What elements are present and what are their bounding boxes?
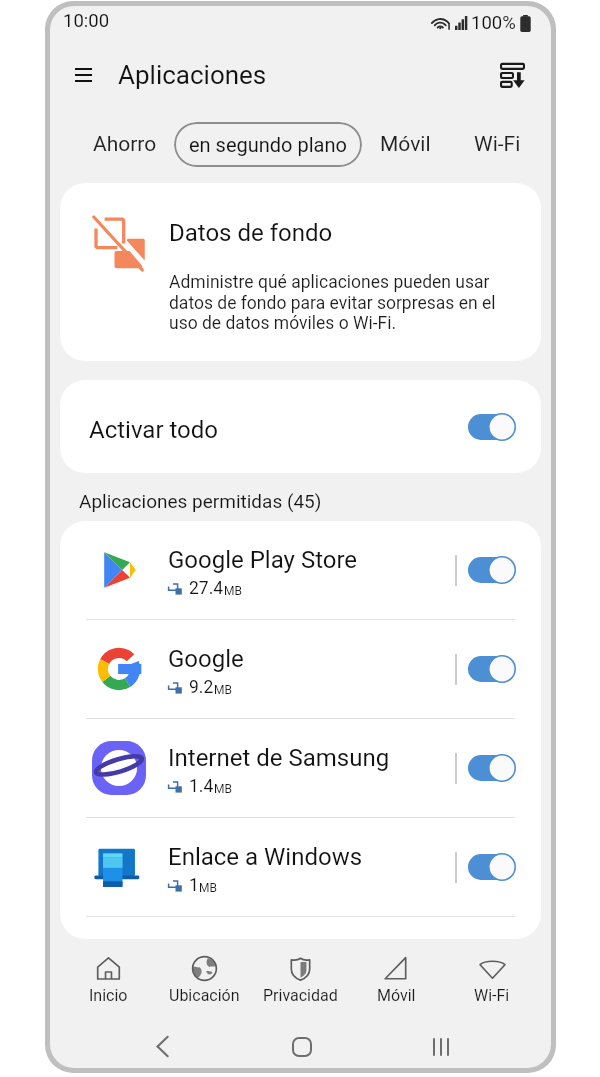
staticText: Móvil xyxy=(377,986,416,1005)
staticText: Inicio xyxy=(89,986,128,1005)
staticText: MB xyxy=(224,584,242,598)
staticText: Activar todo xyxy=(89,416,219,444)
button[interactable]: Toggle xyxy=(468,754,516,782)
button[interactable]: Enlace a Windows xyxy=(60,818,541,916)
button[interactable]: Ubicación xyxy=(156,939,252,1021)
staticText: Internet de Samsung xyxy=(168,744,390,772)
button[interactable]: Toggle xyxy=(468,556,516,584)
staticText: Datos de fondo xyxy=(169,219,333,247)
button[interactable]: Toggle xyxy=(468,413,516,441)
button[interactable]: Google xyxy=(60,620,541,718)
button[interactable]: Ahorro xyxy=(81,121,169,168)
staticText: 9.2 xyxy=(189,677,214,698)
staticText: Enlace a Windows xyxy=(168,843,363,871)
staticText: Wi-Fi xyxy=(474,986,510,1005)
staticText: Google xyxy=(168,645,244,673)
staticText: 1 xyxy=(189,875,199,896)
button[interactable]: Toggle xyxy=(468,655,516,683)
staticText: en segundo plano xyxy=(189,133,347,156)
button[interactable]: Toggle xyxy=(468,853,516,881)
staticText: 10:00 xyxy=(63,10,110,32)
button[interactable]: Menu xyxy=(61,53,105,97)
staticText: 1.4 xyxy=(189,776,214,797)
staticText: 27.4 xyxy=(189,578,224,599)
button[interactable]: en segundo plano xyxy=(174,122,362,167)
staticText: Aplicaciones permitidas (45) xyxy=(79,490,322,512)
staticText: MB xyxy=(199,881,217,895)
staticText: MB xyxy=(214,782,232,796)
staticText: Ubicación xyxy=(169,986,240,1005)
button[interactable]: Inicio xyxy=(61,939,156,1021)
staticText: Administre qué aplicaciones pueden usar … xyxy=(169,272,496,334)
button[interactable]: Back xyxy=(92,1025,232,1068)
button[interactable]: Wi-Fi xyxy=(462,121,533,168)
staticText: MB xyxy=(214,683,232,697)
button[interactable]: Sort xyxy=(491,54,533,96)
button[interactable]: Privacidad xyxy=(252,939,348,1021)
button[interactable]: Móvil xyxy=(368,121,443,168)
staticText: Ahorro xyxy=(93,132,157,157)
button[interactable]: Recents xyxy=(371,1025,510,1068)
staticText: Móvil xyxy=(380,132,431,157)
button[interactable]: Móvil xyxy=(348,939,444,1021)
staticText: Wi-Fi xyxy=(474,132,521,157)
button[interactable]: Wi-Fi xyxy=(444,939,540,1021)
staticText: Google Play Store xyxy=(168,546,358,574)
staticText: 100% xyxy=(471,12,516,34)
button[interactable]: Activar todo xyxy=(60,380,541,473)
button[interactable]: Google Play Store xyxy=(60,521,541,619)
staticText: Aplicaciones xyxy=(118,60,267,90)
staticText: Privacidad xyxy=(263,986,338,1005)
button[interactable]: Internet de Samsung xyxy=(60,719,541,817)
button[interactable]: Home xyxy=(232,1025,371,1068)
